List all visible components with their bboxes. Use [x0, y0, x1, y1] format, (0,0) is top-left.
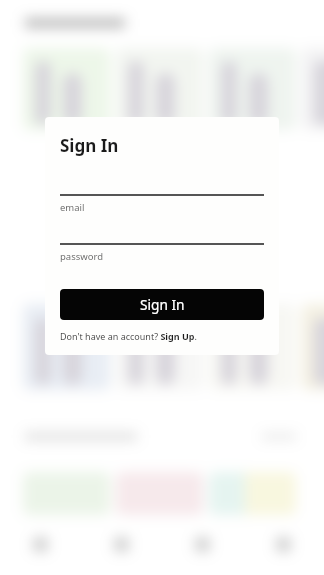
- staticText: password: [60, 250, 104, 263]
- staticText: Don't have an account? Sign Up.: [60, 330, 197, 342]
- button[interactable]: Sign In: [60, 289, 264, 320]
- staticText: email: [60, 201, 85, 214]
- staticText: Sign In: [140, 295, 185, 314]
- button[interactable]: Don't have an account? Sign Up.: [60, 330, 197, 342]
- staticText: Sign In: [60, 134, 119, 157]
